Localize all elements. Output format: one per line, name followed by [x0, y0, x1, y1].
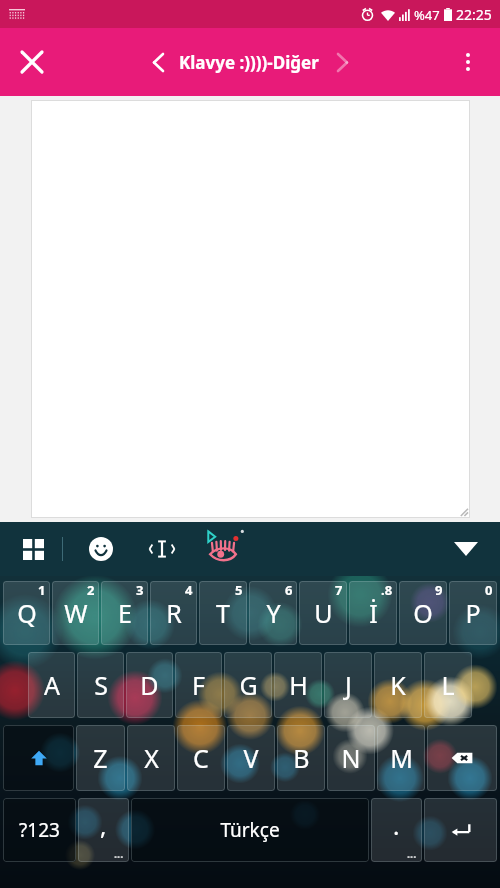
staticText: İ	[369, 596, 378, 630]
staticText: ?123	[19, 817, 60, 843]
staticText: %47	[414, 6, 440, 24]
button[interactable]: K	[374, 652, 422, 718]
staticText: .	[393, 809, 400, 842]
staticText: E	[118, 596, 132, 630]
button[interactable]: N	[327, 725, 375, 791]
staticText: 6	[285, 581, 293, 599]
button[interactable]: Y	[249, 581, 297, 645]
staticText: N	[341, 741, 361, 775]
staticText: F	[192, 668, 205, 702]
staticText: 7	[335, 581, 343, 599]
staticText: Y	[266, 596, 281, 630]
button[interactable]: X	[127, 725, 175, 791]
button[interactable]: F	[175, 652, 222, 718]
button[interactable]: Close	[10, 40, 54, 84]
button[interactable]: W	[52, 581, 99, 645]
button[interactable]: A	[28, 652, 75, 718]
staticText: 5	[235, 581, 243, 599]
staticText: 9	[435, 581, 443, 599]
button[interactable]: Emoji	[79, 527, 123, 571]
button[interactable]: B	[277, 725, 325, 791]
staticText: 4	[185, 581, 193, 599]
staticText: ...	[407, 846, 417, 861]
button[interactable]: M	[377, 725, 425, 791]
staticText: 1	[38, 581, 46, 599]
staticText: ...	[114, 846, 124, 861]
button[interactable]: H	[274, 652, 322, 718]
staticText: 3	[136, 581, 144, 599]
button[interactable]: Shift	[3, 725, 74, 791]
button[interactable]: Z	[76, 725, 125, 791]
button[interactable]: More options	[448, 42, 488, 82]
staticText: O	[413, 596, 433, 630]
button[interactable]: Move cursor	[140, 527, 184, 571]
button[interactable]: V	[227, 725, 275, 791]
staticText: S	[94, 668, 108, 702]
button[interactable]: .	[371, 798, 422, 862]
button[interactable]: Enter	[424, 798, 497, 862]
button[interactable]: S	[77, 652, 124, 718]
button[interactable]: Stickers	[200, 527, 246, 571]
staticText: H	[289, 668, 308, 702]
button[interactable]: ?123	[3, 798, 76, 862]
staticText: G	[239, 668, 258, 702]
button[interactable]: C	[177, 725, 225, 791]
staticText: A	[44, 668, 60, 702]
button[interactable]: İ	[349, 581, 397, 645]
staticText: D	[140, 668, 159, 702]
staticText: 22:25	[456, 5, 492, 24]
staticText: B	[293, 741, 310, 775]
staticText: U	[314, 596, 333, 630]
staticText: ,	[100, 809, 107, 842]
staticText: Klavye :))))-Diğer	[179, 51, 319, 74]
button[interactable]: J	[324, 652, 372, 718]
button[interactable]: R	[150, 581, 197, 645]
button[interactable]: Next	[325, 45, 359, 79]
button[interactable]: L	[424, 652, 472, 718]
staticText: K	[390, 668, 406, 702]
staticText: .8	[381, 581, 393, 599]
button[interactable]: Backspace	[427, 725, 497, 791]
staticText: Z	[93, 741, 108, 775]
button[interactable]: P	[449, 581, 497, 645]
button[interactable]: G	[224, 652, 272, 718]
staticText: C	[193, 741, 209, 775]
button[interactable]: T	[199, 581, 247, 645]
button[interactable]: Previous	[141, 45, 175, 79]
staticText: 2	[87, 581, 95, 599]
staticText: L	[441, 668, 455, 702]
staticText: R	[166, 596, 182, 630]
button[interactable]: Keyboard layouts	[12, 528, 54, 570]
staticText: P	[465, 596, 481, 630]
staticText: 0	[485, 581, 493, 599]
button[interactable]: ,	[78, 798, 129, 862]
button[interactable]: Hide keyboard	[446, 529, 486, 569]
button[interactable]: E	[101, 581, 148, 645]
staticText: X	[144, 741, 159, 775]
button[interactable]: D	[126, 652, 173, 718]
staticText: V	[243, 741, 259, 775]
staticText: W	[64, 596, 88, 630]
button[interactable]: Türkçe	[131, 798, 369, 862]
button[interactable]: O	[399, 581, 447, 645]
staticText: J	[345, 668, 352, 702]
staticText: T	[216, 596, 230, 630]
button[interactable]: U	[299, 581, 347, 645]
staticText: Q	[17, 596, 37, 630]
staticText: Türkçe	[220, 817, 280, 843]
staticText: M	[390, 741, 413, 775]
button[interactable]: Q	[3, 581, 50, 645]
